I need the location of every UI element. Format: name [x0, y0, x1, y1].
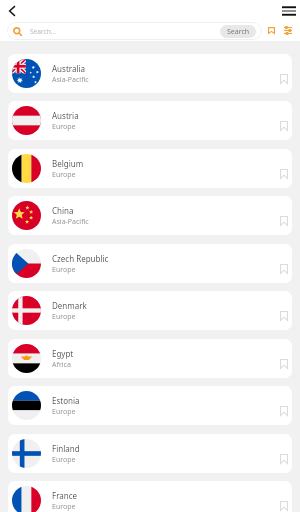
- button[interactable]: Denmark: [8, 291, 292, 330]
- staticText: Europe: [52, 455, 76, 465]
- staticText: China: [52, 205, 74, 216]
- staticText: Search: [227, 27, 250, 37]
- staticText: France: [52, 490, 78, 501]
- button[interactable]: Search: [220, 25, 256, 38]
- button[interactable]: Filter: [279, 22, 296, 39]
- button[interactable]: Austria: [8, 101, 292, 140]
- staticText: Asia-Pacific: [52, 217, 89, 227]
- staticText: Europe: [52, 312, 76, 322]
- button[interactable]: Belgium: [8, 149, 292, 188]
- button[interactable]: Menu: [279, 1, 298, 20]
- staticText: Austria: [52, 110, 79, 121]
- staticText: Europe: [52, 170, 76, 180]
- button[interactable]: France: [8, 481, 292, 512]
- button[interactable]: Australia: [8, 54, 292, 93]
- button[interactable]: Bookmark Egypt: [276, 356, 291, 371]
- staticText: Denmark: [52, 300, 87, 311]
- button[interactable]: Estonia: [8, 386, 292, 425]
- button[interactable]: Bookmark China: [276, 213, 291, 228]
- staticText: Europe: [52, 265, 76, 275]
- staticText: Asia-Pacific: [52, 75, 89, 85]
- staticText: Europe: [52, 502, 76, 512]
- staticText: Europe: [52, 407, 76, 417]
- button[interactable]: Finland: [8, 434, 292, 473]
- button[interactable]: Egypt: [8, 339, 292, 378]
- staticText: Search...: [30, 27, 57, 36]
- button[interactable]: Bookmark Denmark: [276, 308, 291, 323]
- button[interactable]: Bookmark Austria: [276, 118, 291, 133]
- button[interactable]: Bookmark Czech Republic: [276, 261, 291, 276]
- button[interactable]: Bookmark Australia: [276, 71, 291, 86]
- button[interactable]: Czech Republic: [8, 244, 292, 283]
- button[interactable]: Bookmark Finland: [276, 451, 291, 466]
- staticText: Europe: [52, 122, 76, 132]
- button[interactable]: China: [8, 196, 292, 235]
- staticText: Belgium: [52, 158, 84, 169]
- staticText: Estonia: [52, 395, 80, 406]
- staticText: Finland: [52, 443, 80, 454]
- staticText: Australia: [52, 63, 86, 74]
- staticText: Africa: [52, 360, 71, 370]
- button[interactable]: Bookmark France: [276, 498, 291, 512]
- staticText: Egypt: [52, 348, 74, 359]
- button[interactable]: Bookmarks: [263, 22, 280, 39]
- button[interactable]: Bookmark Estonia: [276, 403, 291, 418]
- button[interactable]: Bookmark Belgium: [276, 166, 291, 181]
- button[interactable]: Search...: [7, 22, 262, 40]
- staticText: Czech Republic: [52, 253, 109, 264]
- button[interactable]: Back: [3, 2, 20, 19]
